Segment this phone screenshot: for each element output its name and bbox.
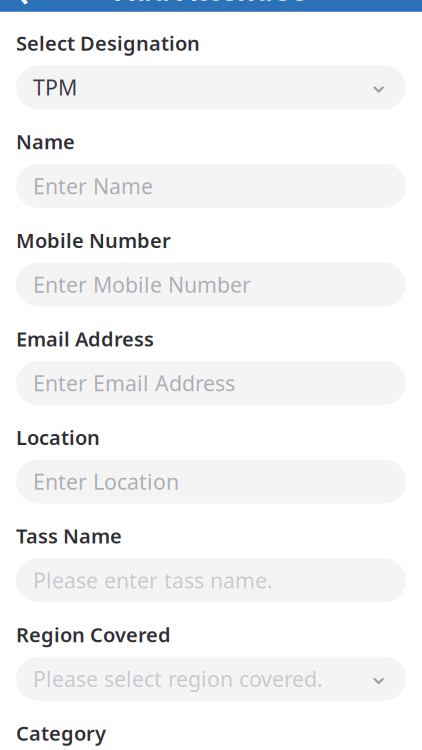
- staticText: ⌄: [368, 69, 389, 98]
- staticText: ⌄: [368, 661, 389, 690]
- button[interactable]: Enter Location: [16, 460, 406, 504]
- staticText: Category: [16, 720, 106, 746]
- staticText: Name: [16, 128, 75, 155]
- staticText: Email Address: [16, 325, 154, 352]
- button[interactable]: TPM: [16, 65, 406, 109]
- staticText: Enter Location: [33, 467, 179, 496]
- staticText: Select Designation: [16, 30, 200, 56]
- button[interactable]: Back: [0, 0, 44, 15]
- button[interactable]: Please enter tass name.: [16, 558, 406, 602]
- staticText: Location: [16, 424, 100, 451]
- button[interactable]: Enter Mobile Number: [16, 262, 406, 306]
- staticText: Add Attendee: [115, 0, 307, 8]
- staticText: ‹: [13, 0, 30, 22]
- staticText: Tass Name: [16, 523, 122, 549]
- staticText: Mobile Number: [16, 227, 171, 253]
- staticText: Enter Mobile Number: [33, 270, 251, 299]
- button[interactable]: Please select region covered.: [16, 657, 406, 701]
- button[interactable]: Enter Email Address: [16, 361, 406, 405]
- staticText: Enter Email Address: [33, 369, 235, 397]
- staticText: TPM: [33, 73, 77, 101]
- staticText: Please select region covered.: [33, 664, 323, 693]
- staticText: Enter Name: [33, 172, 153, 200]
- staticText: Please enter tass name.: [33, 566, 273, 594]
- button[interactable]: Enter Name: [16, 164, 406, 208]
- staticText: Region Covered: [16, 621, 171, 648]
